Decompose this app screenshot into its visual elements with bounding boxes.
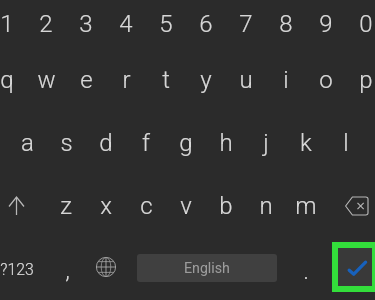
- staticText: m: [295, 192, 317, 220]
- staticText: ,: [65, 256, 70, 284]
- staticText: 7: [239, 10, 253, 38]
- button[interactable]: c: [126, 177, 166, 235]
- staticText: w: [37, 66, 56, 94]
- button[interactable]: j: [246, 114, 286, 172]
- button[interactable]: Enter: [332, 242, 375, 292]
- staticText: h: [219, 129, 233, 157]
- button[interactable]: w: [26, 51, 66, 109]
- button[interactable]: t: [146, 51, 186, 109]
- button[interactable]: k: [286, 114, 326, 172]
- button[interactable]: 6: [186, 0, 226, 53]
- staticText: t: [162, 66, 170, 94]
- staticText: 4: [119, 10, 133, 38]
- staticText: 3: [79, 10, 93, 38]
- button[interactable]: m: [286, 177, 326, 235]
- button[interactable]: n: [246, 177, 286, 235]
- button[interactable]: 0: [346, 0, 375, 53]
- staticText: c: [140, 192, 153, 220]
- staticText: 1: [0, 10, 14, 38]
- button[interactable]: a: [7, 114, 47, 172]
- button[interactable]: q: [0, 51, 27, 109]
- staticText: d: [99, 129, 113, 157]
- button[interactable]: 2: [26, 0, 66, 53]
- staticText: g: [179, 129, 193, 157]
- button[interactable]: 4: [106, 0, 146, 53]
- staticText: z: [60, 192, 72, 220]
- button[interactable]: y: [186, 51, 226, 109]
- button[interactable]: x: [86, 177, 126, 235]
- staticText: n: [259, 192, 273, 220]
- button[interactable]: 8: [266, 0, 306, 53]
- staticText: 0: [359, 10, 373, 38]
- button[interactable]: f: [126, 114, 166, 172]
- staticText: o: [319, 66, 333, 94]
- button[interactable]: u: [226, 51, 266, 109]
- button[interactable]: i: [266, 51, 306, 109]
- button[interactable]: ?123: [0, 247, 40, 291]
- button[interactable]: English: [137, 254, 277, 282]
- staticText: u: [239, 66, 253, 94]
- button[interactable]: s: [46, 114, 86, 172]
- staticText: k: [300, 129, 312, 157]
- button[interactable]: .: [286, 249, 326, 293]
- button[interactable]: 1: [0, 0, 27, 53]
- staticText: s: [60, 129, 73, 157]
- button[interactable]: l: [326, 114, 366, 172]
- button[interactable]: e: [66, 51, 106, 109]
- staticText: x: [100, 192, 112, 220]
- staticText: a: [21, 129, 34, 157]
- staticText: i: [283, 66, 289, 94]
- button[interactable]: g: [166, 114, 206, 172]
- button[interactable]: 5: [146, 0, 186, 53]
- button[interactable]: Change keyboard language: [84, 245, 128, 289]
- staticText: .: [303, 257, 309, 285]
- staticText: p: [359, 66, 373, 94]
- staticText: r: [122, 66, 131, 94]
- button[interactable]: z: [46, 177, 86, 235]
- staticText: 5: [159, 10, 173, 38]
- staticText: q: [0, 66, 14, 94]
- staticText: j: [263, 129, 269, 157]
- button[interactable]: v: [166, 177, 206, 235]
- staticText: l: [343, 129, 349, 157]
- staticText: 6: [199, 10, 213, 38]
- button[interactable]: Shift: [0, 184, 38, 228]
- button[interactable]: 7: [226, 0, 266, 53]
- staticText: 2: [39, 10, 53, 38]
- button[interactable]: 9: [306, 0, 346, 53]
- staticText: v: [180, 192, 192, 220]
- button[interactable]: p: [346, 51, 375, 109]
- button[interactable]: Backspace: [334, 184, 375, 228]
- staticText: 8: [279, 10, 293, 38]
- staticText: b: [219, 192, 233, 220]
- button[interactable]: b: [206, 177, 246, 235]
- staticText: 9: [319, 10, 333, 38]
- button[interactable]: r: [106, 51, 146, 109]
- staticText: ?123: [0, 260, 34, 279]
- button[interactable]: o: [306, 51, 346, 109]
- staticText: e: [80, 66, 93, 94]
- button[interactable]: 3: [66, 0, 106, 53]
- button[interactable]: h: [206, 114, 246, 172]
- button[interactable]: ,: [47, 248, 87, 292]
- staticText: y: [200, 66, 212, 94]
- staticText: f: [142, 129, 150, 157]
- button[interactable]: d: [86, 114, 126, 172]
- staticText: English: [184, 260, 230, 277]
